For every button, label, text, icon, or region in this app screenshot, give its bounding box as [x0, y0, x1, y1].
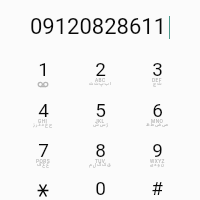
button[interactable]: Five — [72, 96, 128, 134]
button[interactable]: One — [15, 55, 71, 93]
staticText: 09120828611 — [30, 14, 167, 40]
staticText: 0 — [95, 177, 106, 199]
staticText: WXYZ — [150, 159, 165, 165]
staticText: ص ض ط ظ — [146, 121, 168, 129]
button[interactable]: Eight — [72, 136, 128, 174]
button[interactable]: Six — [129, 96, 185, 134]
button[interactable]: Seven — [15, 136, 71, 174]
button[interactable]: Four — [15, 96, 71, 134]
staticText: 7 — [38, 139, 49, 161]
staticText: 8 — [95, 139, 106, 161]
staticText: 9 — [152, 139, 163, 161]
staticText: ح خ د ذ ر ز — [33, 121, 53, 129]
staticText: ا ب پ ت ث — [89, 80, 111, 88]
staticText: JKL — [95, 119, 105, 125]
staticText: ن و ه ی — [150, 161, 164, 169]
staticText: 5 — [95, 99, 106, 121]
staticText: ABC — [95, 78, 106, 84]
button[interactable]: Zero — [72, 174, 128, 200]
staticText: ق ک گ ل م — [89, 161, 111, 169]
staticText: ژ س ش — [93, 121, 108, 129]
staticText: 2 — [95, 58, 106, 80]
staticText: TUV — [95, 159, 106, 165]
staticText: ع غ ف — [37, 161, 49, 169]
button[interactable]: 09120828611 — [0, 0, 200, 54]
staticText: ث ج — [153, 80, 162, 88]
staticText: MNO — [151, 119, 164, 125]
button[interactable]: Nine — [129, 136, 185, 174]
staticText: # — [151, 177, 163, 199]
staticText: GHI — [38, 119, 48, 125]
staticText: 1 — [38, 58, 49, 80]
button[interactable]: Pound — [129, 174, 185, 200]
button[interactable]: Two — [72, 55, 128, 93]
staticText: 6 — [152, 99, 163, 121]
staticText: PQRS — [36, 159, 50, 165]
button[interactable]: Three — [129, 55, 185, 93]
button[interactable]: Star — [15, 171, 71, 200]
staticText: 4 — [38, 99, 49, 121]
staticText: 3 — [152, 58, 163, 80]
staticText: DEF — [152, 78, 162, 84]
